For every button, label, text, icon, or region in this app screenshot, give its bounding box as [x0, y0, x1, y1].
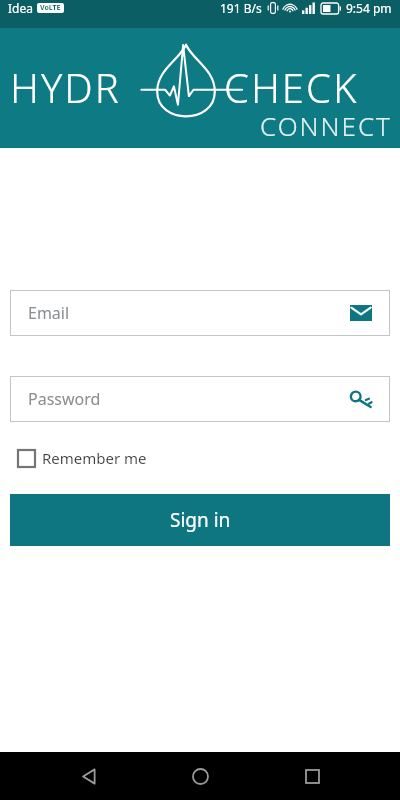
staticText: Email: [28, 302, 70, 324]
staticText: 9:54 pm: [346, 0, 392, 16]
other: Email: [350, 305, 372, 321]
staticText: Sign in: [170, 507, 231, 533]
staticText: HYDR: [10, 60, 121, 114]
button[interactable]: Sign in: [10, 494, 390, 546]
staticText: Idea: [8, 0, 33, 16]
staticText: 191 B/s: [220, 0, 262, 16]
button[interactable]: Email: [10, 290, 390, 336]
button[interactable]: Password: [10, 376, 390, 422]
staticText: Password: [28, 388, 101, 410]
button[interactable]: Home: [176, 752, 224, 800]
staticText: Remember me: [42, 448, 147, 468]
staticText: CONNECT: [260, 108, 392, 143]
staticText: VoLTE: [40, 3, 61, 13]
staticText: CHECK: [224, 60, 359, 114]
button[interactable]: Recent apps: [288, 752, 336, 800]
button[interactable]: Back: [64, 752, 112, 800]
button[interactable]: Remember me: [16, 444, 149, 472]
other: Password: [350, 390, 372, 408]
